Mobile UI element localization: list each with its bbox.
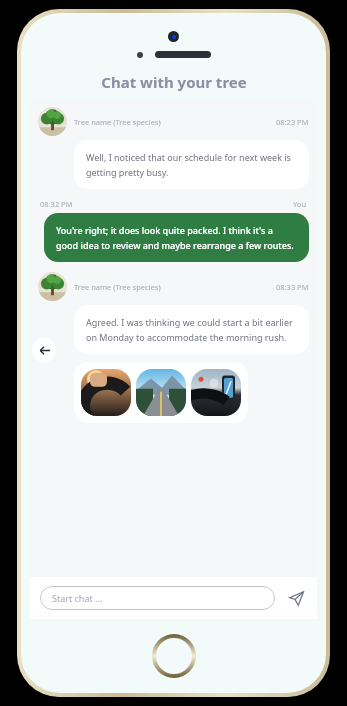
staticText: 08:23 PM [276,117,309,127]
button[interactable]: Back [32,338,56,362]
button[interactable]: Well, I noticed that our schedule for ne… [74,140,309,189]
staticText: You're right; it does look quite packed.… [56,224,297,251]
button[interactable]: Home [152,634,196,678]
staticText: Tree name (Tree species) [74,117,161,127]
button[interactable]: Photo [191,369,241,416]
staticText: Well, I noticed that our schedule for ne… [86,151,297,178]
button[interactable]: Photo [136,369,186,416]
staticText: Start chat ... [52,592,103,604]
button[interactable]: Send [285,587,307,609]
button[interactable]: You're right; it does look quite packed.… [44,213,309,262]
staticText: 08:33 PM [276,282,309,292]
button[interactable]: Agreed. I was thinking we could start a … [74,305,309,354]
button[interactable]: Start chat ... [40,586,275,610]
staticText: You [293,199,307,209]
staticText: Chat with your tree [101,72,247,92]
button[interactable]: Photo [81,369,131,416]
staticText: Tree name (Tree species) [74,282,161,292]
staticText: Agreed. I was thinking we could start a … [86,316,297,343]
staticText: 08:32 PM [40,199,73,209]
